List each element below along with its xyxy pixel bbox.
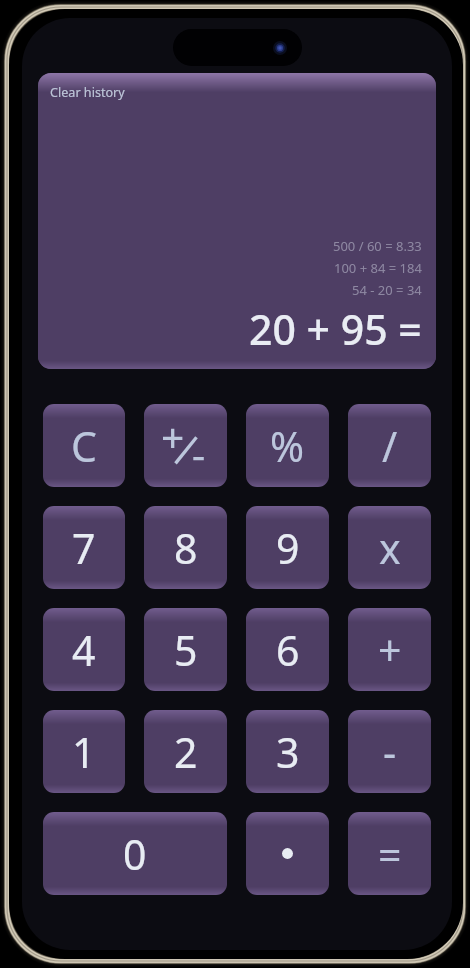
- button[interactable]: [144, 404, 227, 487]
- button[interactable]: C: [43, 404, 125, 487]
- button[interactable]: 0: [43, 812, 227, 895]
- staticText: /: [382, 418, 398, 474]
- staticText: 0: [123, 826, 147, 882]
- button[interactable]: +: [348, 608, 431, 691]
- staticText: C: [71, 418, 97, 474]
- staticText: 9: [276, 520, 300, 576]
- staticText: 7: [72, 520, 96, 576]
- staticText: 6: [276, 622, 300, 678]
- button[interactable]: 1: [43, 710, 125, 793]
- button[interactable]: 3: [246, 710, 329, 793]
- button[interactable]: =: [348, 812, 431, 895]
- staticText: 3: [276, 724, 300, 780]
- staticText: 100 + 84 = 184: [334, 259, 422, 277]
- button[interactable]: x: [348, 506, 431, 589]
- staticText: -: [383, 724, 397, 780]
- staticText: 500 / 60 = 8.33: [333, 237, 422, 255]
- button[interactable]: %: [246, 404, 329, 487]
- button[interactable]: /: [348, 404, 431, 487]
- button[interactable]: Clear history: [38, 73, 125, 101]
- staticText: x: [379, 520, 401, 576]
- staticText: =: [378, 826, 402, 882]
- button[interactable]: 8: [144, 506, 227, 589]
- button[interactable]: 7: [43, 506, 125, 589]
- button[interactable]: 4: [43, 608, 125, 691]
- button[interactable]: 9: [246, 506, 329, 589]
- staticText: %: [270, 418, 305, 474]
- staticText: 20 + 95 =: [249, 301, 422, 357]
- staticText: 5: [174, 622, 198, 678]
- button[interactable]: 6: [246, 608, 329, 691]
- button[interactable]: 5: [144, 608, 227, 691]
- staticText: 8: [174, 520, 198, 576]
- staticText: +: [378, 622, 402, 678]
- button[interactable]: -: [348, 710, 431, 793]
- staticText: 2: [174, 724, 198, 780]
- staticText: 1: [72, 724, 96, 780]
- staticText: 4: [72, 622, 96, 678]
- button[interactable]: Decimal point: [246, 812, 329, 895]
- button[interactable]: 2: [144, 710, 227, 793]
- staticText: 54 - 20 = 34: [352, 281, 422, 299]
